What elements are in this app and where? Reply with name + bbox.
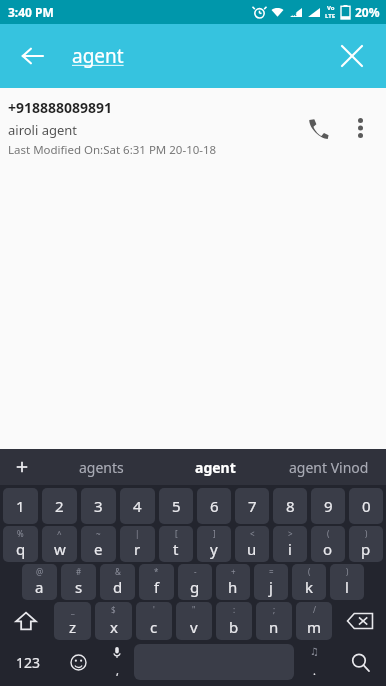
button[interactable]: 6 — [197, 488, 231, 524]
button[interactable]: > — [273, 526, 307, 562]
staticText: . — [313, 663, 316, 678]
button[interactable]: _ — [54, 602, 91, 640]
staticText: r — [134, 539, 141, 559]
button[interactable]: Backspace — [334, 602, 386, 640]
staticText: ; — [273, 604, 276, 615]
staticText: > — [288, 528, 293, 539]
staticText: f — [154, 577, 160, 597]
staticText: ) — [365, 528, 368, 539]
button[interactable]: agent Vinod — [272, 449, 386, 485]
staticText: airoli agent — [8, 121, 78, 139]
button[interactable]: # — [61, 564, 96, 600]
staticText: 6 — [210, 496, 219, 516]
staticText: $ — [111, 604, 116, 615]
staticText: o — [323, 539, 333, 559]
staticText: p — [361, 539, 371, 559]
staticText: u — [247, 539, 257, 559]
button[interactable]: @ — [22, 564, 57, 600]
staticText: n — [269, 617, 279, 637]
staticText: 2 — [55, 496, 64, 516]
staticText: + — [231, 566, 236, 577]
button[interactable]: ) — [349, 526, 383, 562]
staticText: 3:40 PM — [8, 4, 54, 20]
button[interactable]: Voice input — [100, 642, 134, 682]
button[interactable]: agent — [158, 449, 272, 485]
button[interactable]: ] — [197, 526, 231, 562]
button[interactable]: 7 — [235, 488, 269, 524]
staticText: a — [35, 577, 44, 597]
button[interactable]: 9 — [311, 488, 345, 524]
button[interactable]: 0 — [349, 488, 383, 524]
staticText: ] — [213, 528, 216, 539]
button[interactable]: Add word — [0, 449, 44, 485]
staticText: q — [16, 539, 26, 559]
staticText: " — [192, 604, 196, 615]
staticText: * — [154, 566, 159, 577]
button[interactable]: 123 — [0, 642, 56, 682]
button[interactable]: agents — [44, 449, 158, 485]
button[interactable]: 5 — [159, 488, 193, 524]
button[interactable]: % — [3, 526, 38, 562]
staticText: Last Modified On:Sat 6:31 PM 20-10-18 — [8, 142, 217, 158]
button[interactable]: ' — [136, 602, 172, 640]
button[interactable]: +918888089891 — [0, 88, 386, 168]
button[interactable]: - — [178, 564, 212, 600]
staticText: 3 — [94, 496, 103, 516]
button[interactable]: Emoji — [56, 642, 100, 682]
staticText: ' — [153, 604, 155, 615]
staticText: & — [115, 566, 121, 577]
button[interactable]: < — [235, 526, 269, 562]
button[interactable]: [ — [159, 526, 193, 562]
button[interactable]: ( — [292, 564, 326, 600]
button[interactable]: 1 — [3, 488, 38, 524]
button[interactable]: Back — [8, 32, 56, 80]
staticText: # — [76, 566, 82, 577]
button[interactable]: | — [120, 526, 155, 562]
button[interactable]: Settings — [294, 642, 334, 682]
staticText: t — [173, 539, 179, 559]
button[interactable]: agent — [72, 43, 124, 69]
button[interactable]: 4 — [120, 488, 155, 524]
staticText: ( — [327, 528, 330, 539]
button[interactable]: More options — [340, 108, 380, 148]
staticText: ( — [308, 566, 311, 577]
staticText: _ — [71, 604, 75, 615]
staticText: c — [150, 617, 158, 637]
staticText: [ — [175, 528, 178, 539]
button[interactable]: Call — [296, 106, 340, 150]
staticText: 4 — [133, 496, 142, 516]
button[interactable]: Search — [334, 642, 386, 682]
staticText: 7 — [248, 496, 257, 516]
button[interactable]: & — [100, 564, 135, 600]
button[interactable]: Clear search — [328, 32, 376, 80]
button[interactable]: ^ — [42, 526, 77, 562]
button[interactable]: + — [216, 564, 250, 600]
button[interactable]: Shift — [0, 602, 52, 640]
staticText: < — [250, 528, 255, 539]
staticText: | — [135, 528, 140, 539]
staticText: - — [194, 566, 197, 577]
button[interactable]: ; — [256, 602, 292, 640]
button[interactable]: 2 — [42, 488, 77, 524]
staticText: z — [69, 617, 77, 637]
button[interactable]: = — [254, 564, 288, 600]
button[interactable]: " — [176, 602, 212, 640]
button[interactable]: ) — [330, 564, 364, 600]
staticText: 123 — [16, 653, 41, 672]
button[interactable]: : — [216, 602, 252, 640]
staticText: 1 — [16, 496, 25, 516]
staticText: v — [190, 617, 198, 637]
button[interactable]: ( — [311, 526, 345, 562]
button[interactable]: * — [139, 564, 174, 600]
staticText: s — [75, 577, 83, 597]
staticText: y — [210, 539, 218, 559]
button[interactable]: ~ — [81, 526, 116, 562]
staticText: ^ — [57, 528, 62, 539]
button[interactable]: / — [296, 602, 332, 640]
staticText: ~ — [96, 528, 101, 539]
button[interactable]: 8 — [273, 488, 307, 524]
button[interactable]: $ — [95, 602, 132, 640]
button[interactable]: 3 — [81, 488, 116, 524]
staticText: l — [345, 577, 349, 597]
